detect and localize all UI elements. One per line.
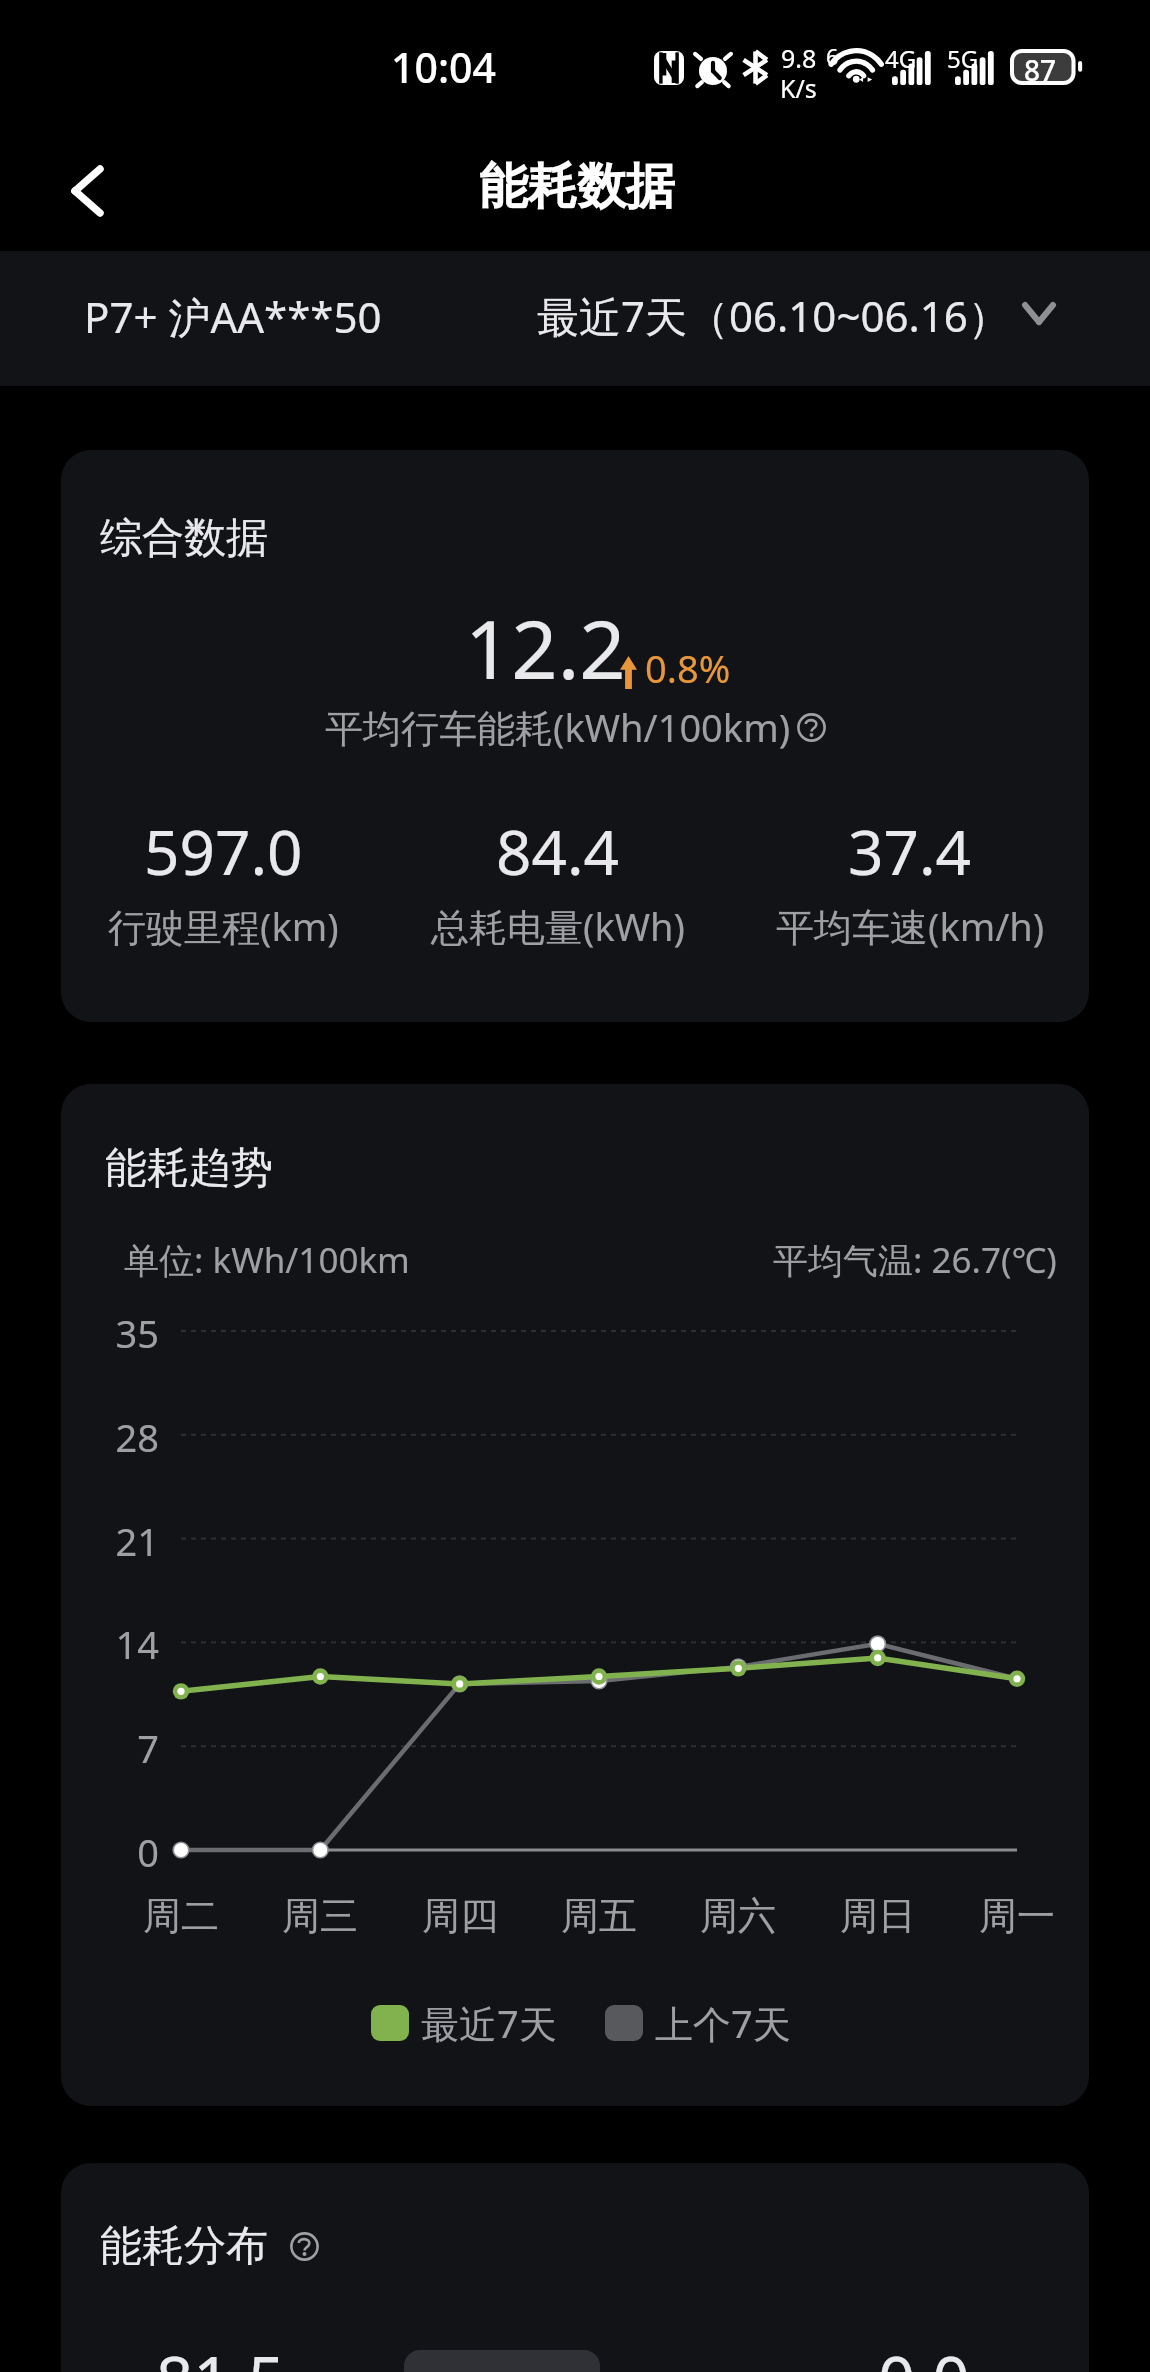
- staticText: 周二: [121, 1892, 241, 1940]
- button[interactable]: 上个7天: [605, 1997, 791, 2049]
- staticText: 0: [61, 1826, 159, 1878]
- staticText: 行驶里程(km): [108, 900, 339, 952]
- button[interactable]: 84.4: [388, 809, 728, 952]
- staticText: 81.5: [156, 2335, 285, 2372]
- staticText: 最近7天: [421, 1997, 557, 2049]
- staticText: 9.8: [781, 41, 817, 75]
- staticText: 4G: [885, 42, 917, 75]
- staticText: 87: [1024, 51, 1057, 87]
- button[interactable]: 37.4: [740, 809, 1080, 952]
- staticText: 综合数据: [100, 512, 268, 565]
- staticText: 周五: [539, 1892, 659, 1940]
- staticText: 平均车速(km/h): [776, 900, 1045, 952]
- staticText: 14: [61, 1618, 159, 1670]
- staticText: 597.0: [144, 809, 303, 893]
- button[interactable]: Back: [32, 130, 142, 251]
- button[interactable]: P7+ 沪AA***50: [84, 288, 382, 345]
- button[interactable]: 最近7天: [371, 1997, 557, 2049]
- button[interactable]: Help: [290, 2232, 319, 2261]
- staticText: 37.4: [848, 809, 972, 893]
- button[interactable]: 597.0: [61, 809, 393, 952]
- staticText: 单位: kWh/100km: [124, 1236, 410, 1284]
- button[interactable]: 最近7天（06.10~06.16）: [537, 287, 1056, 344]
- staticText: 平均气温: 26.7(℃): [773, 1236, 1057, 1284]
- staticText: 7: [61, 1722, 159, 1774]
- staticText: 总耗电量(kWh): [431, 900, 685, 952]
- staticText: 平均行车能耗(kWh/100km): [325, 701, 791, 753]
- staticText: 周四: [400, 1892, 520, 1940]
- staticText: 能耗分布: [100, 2220, 268, 2273]
- staticText: 周一: [957, 1892, 1077, 1940]
- staticText: 84.4: [496, 809, 620, 893]
- staticText: 最近7天（06.10~06.16）: [537, 287, 1010, 344]
- staticText: 6: [826, 41, 839, 71]
- staticText: 能耗趋势: [105, 1142, 273, 1195]
- staticText: 35: [61, 1307, 159, 1359]
- staticText: 上个7天: [655, 1997, 791, 2049]
- staticText: 28: [61, 1411, 159, 1463]
- staticText: 10:04: [391, 39, 496, 95]
- staticText: 0.0: [878, 2335, 970, 2372]
- staticText: 12.2: [465, 592, 626, 702]
- staticText: K/s: [780, 71, 817, 105]
- staticText: 5G: [947, 42, 979, 75]
- staticText: 0.8%: [645, 642, 731, 694]
- staticText: 周日: [818, 1892, 938, 1940]
- button[interactable]: 能耗趋势: [61, 1084, 1089, 2106]
- button[interactable]: 能耗分布: [61, 2163, 1089, 2372]
- staticText: 周三: [260, 1892, 380, 1940]
- staticText: 周六: [678, 1892, 798, 1940]
- staticText: 能耗数据: [479, 156, 675, 218]
- button[interactable]: 综合数据: [61, 450, 1089, 1022]
- staticText: 21: [61, 1515, 159, 1567]
- button[interactable]: Help: [797, 713, 826, 742]
